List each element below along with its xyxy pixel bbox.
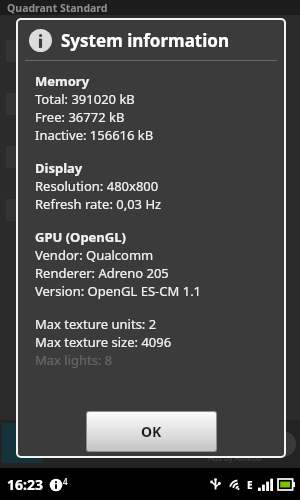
staticText: System information	[61, 29, 229, 52]
staticText: Version: OpenGL ES-CM 1.1	[35, 282, 202, 300]
other: Wi-Fi	[227, 477, 242, 492]
staticText: Memory	[35, 72, 90, 90]
other: Notifications	[49, 478, 63, 492]
staticText: Resolution: 480x800	[35, 177, 159, 195]
other: Signal	[258, 478, 273, 491]
staticText: 4	[63, 476, 68, 487]
staticText: Free: 36772 kB	[35, 108, 125, 126]
other: Battery	[278, 479, 295, 490]
staticText: Max lights: 8	[35, 351, 113, 369]
other: USB	[209, 478, 222, 491]
staticText: Quadrant Standard	[7, 1, 108, 15]
staticText: Ads by AdMob	[208, 452, 262, 463]
staticText: GPU (OpenGL)	[35, 228, 126, 246]
staticText: 16:23	[7, 475, 43, 494]
button[interactable]: OK	[87, 412, 216, 451]
staticText: About	[50, 221, 99, 244]
staticText: Refresh rate: 0,03 Hz	[35, 195, 162, 213]
staticText: System information	[50, 162, 207, 185]
staticText: Run full benchmark	[50, 44, 207, 67]
staticText: OK	[141, 422, 162, 441]
staticText: Горящие туры Москвы	[46, 426, 177, 441]
staticText: Vendor: Qualcomm	[35, 246, 154, 264]
staticText: Max texture size: 4096	[35, 333, 172, 351]
staticText: Renderer: Adreno 205	[35, 264, 169, 282]
staticText: Inactive: 156616 kB	[35, 126, 154, 144]
staticText: Display	[35, 159, 83, 177]
staticText: Max texture units: 2	[35, 315, 157, 333]
staticText: Result browser	[50, 103, 169, 126]
staticText: Total: 391020 kB	[35, 90, 135, 108]
staticText: E	[247, 478, 253, 492]
